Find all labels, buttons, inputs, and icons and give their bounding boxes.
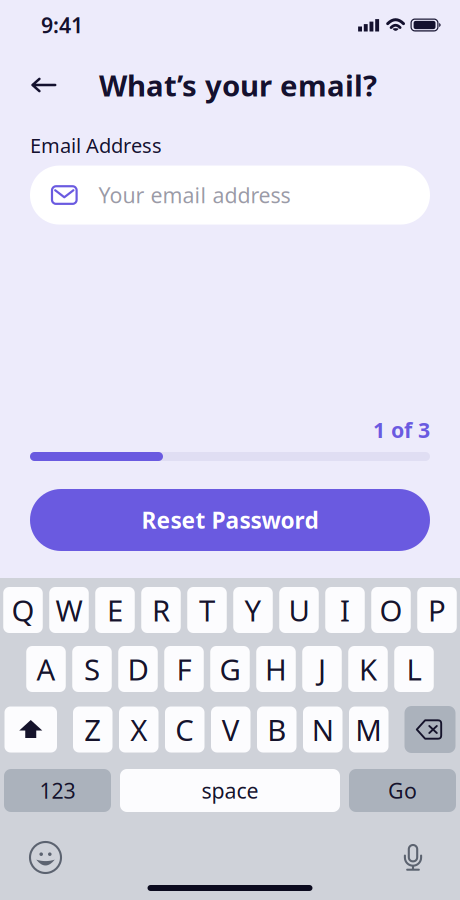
button[interactable]: J [302,646,342,692]
button[interactable]: G [210,646,250,692]
button[interactable]: B [257,706,296,752]
staticText: G [219,649,240,688]
staticText: 1 of 3 [373,416,430,444]
staticText: F [176,649,191,688]
staticText: E [107,590,123,629]
button[interactable]: Emoji [15,837,75,878]
button[interactable]: U [279,587,319,633]
button[interactable]: Y [233,587,273,633]
staticText: Reset Password [141,505,318,535]
button[interactable]: D [118,646,158,692]
button[interactable]: L [394,646,434,692]
button[interactable]: R [141,587,181,633]
staticText: Z [84,710,101,749]
button[interactable]: Go [349,769,456,812]
staticText: S [84,649,100,688]
staticText: M [355,710,382,749]
button[interactable]: W [49,587,89,633]
staticText: I [340,590,350,629]
button[interactable]: Back [18,63,69,106]
staticText: T [199,590,215,629]
staticText: X [130,710,147,749]
button[interactable]: I [325,587,365,633]
button[interactable]: 123 [4,769,111,812]
staticText: W [55,590,82,629]
button[interactable]: X [119,706,158,752]
staticText: U [288,590,309,629]
staticText: K [359,649,377,688]
staticText: Y [244,590,261,629]
staticText: 9:41 [41,11,83,39]
staticText: Q [11,590,34,629]
button[interactable]: Q [3,587,43,633]
button[interactable]: M [349,706,388,752]
button[interactable]: space [120,769,340,812]
staticText: R [152,590,170,629]
button[interactable]: C [165,706,204,752]
button[interactable]: Backspace [404,706,455,753]
staticText: Your email address [99,181,291,209]
button[interactable]: P [417,587,457,633]
staticText: C [175,710,194,749]
staticText: A [36,649,55,688]
staticText: N [312,710,334,749]
button[interactable]: S [72,646,112,692]
button[interactable]: N [303,706,342,752]
button[interactable]: O [371,587,411,633]
button[interactable]: Shift [4,706,57,752]
staticText: 123 [39,776,75,805]
staticText: L [406,649,421,688]
staticText: H [265,649,287,688]
staticText: space [201,776,258,805]
staticText: V [222,710,240,749]
button[interactable]: Reset Password [30,489,430,551]
staticText: Go [388,776,417,805]
staticText: O [379,590,402,629]
staticText: P [428,590,446,629]
staticText: D [127,649,148,688]
button[interactable]: K [348,646,388,692]
button[interactable]: F [164,646,204,692]
staticText: Email Address [30,132,162,159]
staticText: What’s your email? [99,65,377,104]
button[interactable]: A [26,646,66,692]
button[interactable]: T [187,587,227,633]
button[interactable]: E [95,587,135,633]
button[interactable]: Z [73,706,112,752]
staticText: J [318,649,326,688]
button[interactable]: H [256,646,296,692]
staticText: B [267,710,286,749]
button[interactable]: Dictation [389,841,437,874]
button[interactable]: V [211,706,250,752]
